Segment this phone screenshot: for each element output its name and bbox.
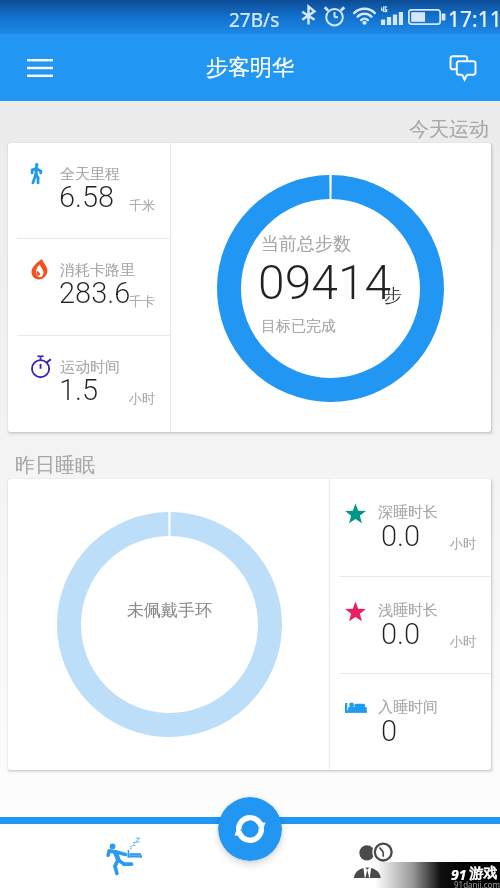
staticText: 当前总步数: [261, 233, 351, 256]
staticText: 入睡时间: [378, 698, 438, 717]
button[interactable]: Sport: [103, 835, 147, 879]
button[interactable]: 消耗卡路里: [8, 239, 170, 335]
staticText: 小时: [450, 633, 476, 649]
staticText: 1.5: [59, 373, 99, 407]
button[interactable]: 深睡时长: [330, 479, 491, 576]
staticText: 浅睡时长: [378, 601, 438, 620]
staticText: 深睡时长: [378, 503, 438, 522]
button[interactable]: Profile: [352, 837, 396, 881]
staticText: 0.0: [381, 519, 421, 553]
staticText: 未佩戴手环: [127, 600, 212, 621]
staticText: 0.0: [381, 617, 421, 651]
staticText: 0: [381, 714, 398, 748]
staticText: 6.58: [59, 180, 115, 214]
staticText: 91: [451, 865, 467, 884]
button[interactable]: Messages: [440, 45, 486, 91]
staticText: 09414: [258, 254, 392, 310]
staticText: 游戏: [469, 865, 497, 883]
staticText: 昨日睡眠: [15, 453, 95, 478]
staticText: 步: [384, 285, 402, 308]
button[interactable]: 全天里程: [8, 143, 170, 238]
staticText: 27B/s: [229, 7, 280, 33]
staticText: 今天运动: [409, 117, 489, 142]
button[interactable]: 运动时间: [8, 336, 170, 432]
button[interactable]: 浅睡时长: [330, 577, 491, 673]
staticText: 目标已完成: [261, 317, 336, 336]
staticText: 全天里程: [60, 165, 120, 184]
button[interactable]: Menu: [17, 45, 63, 91]
staticText: 小时: [129, 390, 155, 406]
staticText: 小时: [450, 535, 476, 551]
staticText: 步客明华: [206, 54, 294, 82]
staticText: 17:11: [448, 5, 500, 34]
button[interactable]: 入睡时间: [330, 674, 491, 770]
staticText: 运动时间: [60, 358, 120, 377]
staticText: 91danji.com: [454, 879, 500, 888]
staticText: 千卡: [129, 293, 155, 309]
button[interactable]: Sync: [218, 797, 282, 861]
staticText: 千米: [129, 197, 155, 213]
staticText: 消耗卡路里: [60, 261, 135, 280]
staticText: 283.6: [59, 276, 131, 310]
